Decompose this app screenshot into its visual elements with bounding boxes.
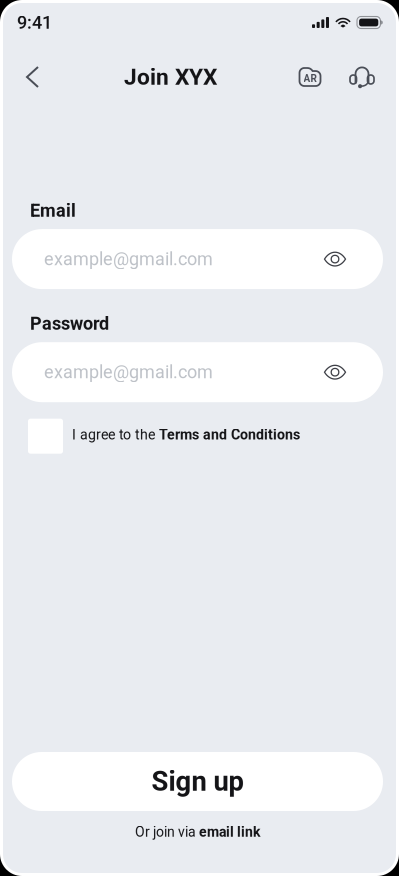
button[interactable]: Back [14,58,51,96]
staticText: I agree to the Terms and Conditions [72,427,300,443]
staticText: Or join via email link [135,824,260,840]
staticText: Password [30,313,109,334]
staticText: example@gmail.com [44,362,213,383]
button[interactable]: I agree to the Terms and Conditions [12,414,383,458]
staticText: example@gmail.com [44,248,213,270]
button[interactable]: Sign up [12,752,383,811]
button[interactable]: Support [336,57,382,97]
staticText: Sign up [151,765,243,797]
button[interactable]: Show password [312,232,358,286]
staticText: AR [303,73,316,84]
staticText: 9:41 [17,12,52,33]
button[interactable]: Or join via email link [12,821,383,843]
staticText: Email [30,200,76,221]
button[interactable]: Show password [312,345,358,399]
button[interactable]: AR view [290,57,336,97]
staticText: Join XYX [124,64,217,90]
